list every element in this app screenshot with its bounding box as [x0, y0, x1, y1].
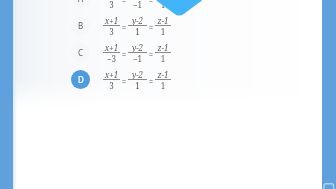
staticText: y−2	[128, 69, 147, 80]
staticText: −3	[103, 53, 120, 64]
staticText: 1	[128, 80, 147, 91]
staticText: x+1	[103, 42, 120, 53]
staticText: C	[78, 47, 84, 58]
staticText: 3	[103, 0, 120, 10]
staticText: =	[120, 0, 128, 6]
staticText: y−2	[128, 15, 147, 26]
staticText: x+1	[103, 69, 120, 80]
staticText: y−2	[128, 42, 147, 53]
staticText: D	[78, 74, 84, 85]
staticText: −1	[128, 53, 147, 64]
staticText: =	[120, 22, 128, 33]
staticText: 1	[155, 53, 171, 64]
staticText: z−1	[155, 69, 171, 80]
button[interactable]: A	[13, 0, 322, 12]
button[interactable]: B	[13, 13, 322, 39]
staticText: 1	[155, 26, 171, 37]
staticText: =	[147, 49, 155, 60]
staticText: x+1	[103, 15, 120, 26]
staticText: z−1	[155, 42, 171, 53]
staticText: 3	[103, 26, 120, 37]
staticText: =	[120, 49, 128, 60]
staticText: B	[78, 20, 84, 31]
button[interactable]: Feedback	[322, 175, 336, 189]
staticText: −1	[128, 0, 147, 10]
staticText: =	[147, 0, 155, 6]
staticText: =	[147, 76, 155, 87]
button[interactable]: C	[13, 40, 322, 66]
staticText: 1	[155, 0, 171, 10]
staticText: 1	[128, 26, 147, 37]
button[interactable]: D	[13, 67, 322, 93]
staticText: =	[120, 76, 128, 87]
staticText: A	[78, 0, 84, 4]
staticText: 3	[103, 80, 120, 91]
staticText: z−1	[155, 15, 171, 26]
staticText: 1	[155, 80, 171, 91]
staticText: =	[147, 22, 155, 33]
